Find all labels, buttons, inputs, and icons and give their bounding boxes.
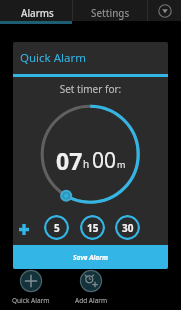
staticText: m bbox=[117, 158, 126, 170]
staticText: 15 bbox=[87, 221, 99, 235]
staticText: 00 bbox=[92, 146, 117, 175]
staticText: 30 bbox=[122, 221, 134, 235]
button[interactable]: Settings bbox=[73, 0, 147, 21]
staticText: Set timer for: bbox=[13, 82, 168, 96]
staticText: 07 bbox=[56, 145, 83, 176]
staticText: h bbox=[83, 157, 90, 171]
button[interactable]: 5 bbox=[44, 215, 69, 240]
button[interactable]: 15 bbox=[80, 215, 105, 240]
staticText: Save Alarm bbox=[73, 253, 108, 262]
button[interactable]: Add Alarm bbox=[61, 269, 121, 310]
staticText: Add Alarm bbox=[75, 296, 108, 305]
staticText: Quick Alarm bbox=[20, 50, 86, 66]
staticText: Quick Alarm bbox=[12, 296, 50, 305]
button[interactable]: Alarms bbox=[0, 0, 72, 21]
button[interactable]: 30 bbox=[115, 215, 140, 240]
staticText: 5 bbox=[54, 221, 60, 235]
staticText: Alarms bbox=[21, 7, 54, 20]
button[interactable]: Save Alarm bbox=[13, 245, 168, 269]
button[interactable]: Add custom preset bbox=[17, 215, 31, 243]
button[interactable]: More options bbox=[148, 0, 181, 21]
button[interactable]: Quick Alarm bbox=[0, 269, 61, 310]
staticText: Settings bbox=[91, 7, 130, 20]
